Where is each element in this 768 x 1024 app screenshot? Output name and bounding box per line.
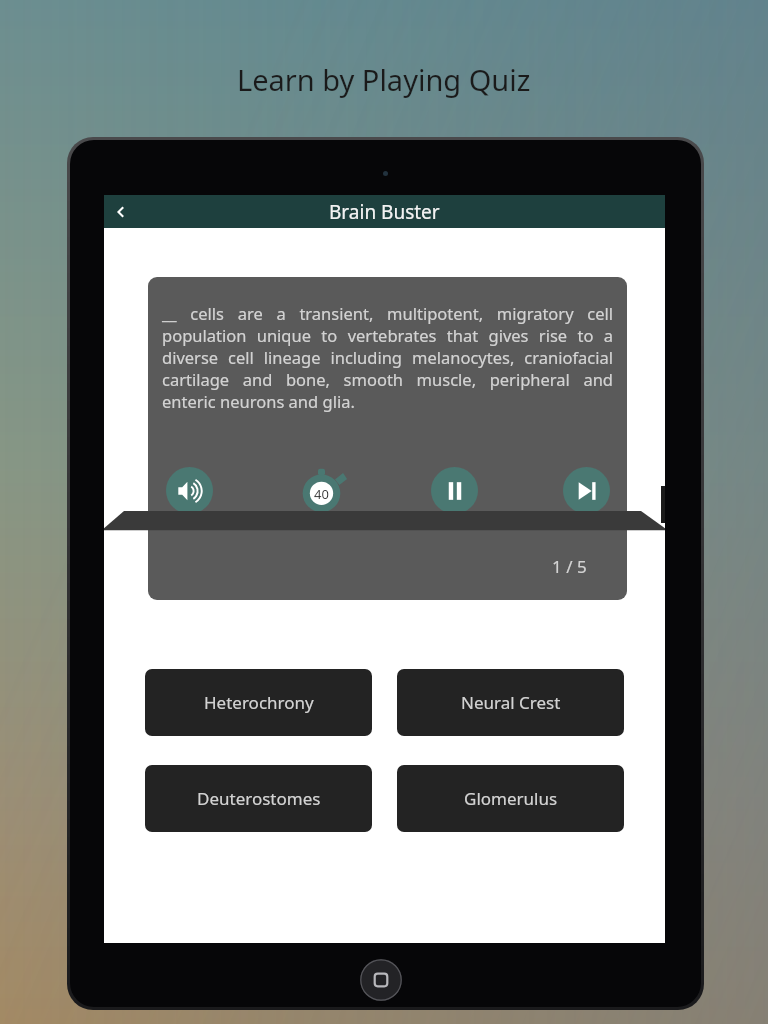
button[interactable]: Neural Crest bbox=[397, 669, 624, 736]
button[interactable]: Back bbox=[104, 195, 137, 228]
button[interactable]: Deuterostomes bbox=[145, 765, 372, 832]
staticText: __ cells are a transient, multipotent, m… bbox=[162, 303, 613, 413]
staticText: Glomerulus bbox=[464, 787, 558, 810]
staticText: 40 bbox=[314, 485, 329, 503]
staticText: 1 / 5 bbox=[552, 555, 587, 578]
button[interactable]: Pause bbox=[431, 467, 478, 514]
button[interactable]: Next question bbox=[563, 467, 610, 514]
button[interactable]: Timer 40 seconds bbox=[298, 467, 345, 514]
staticText: Neural Crest bbox=[461, 691, 561, 714]
button[interactable]: Volume bbox=[166, 467, 213, 514]
staticText: Learn by Playing Quiz bbox=[237, 60, 531, 99]
staticText: Brain Buster bbox=[329, 199, 440, 225]
staticText: Heterochrony bbox=[204, 691, 314, 714]
button[interactable]: Glomerulus bbox=[397, 765, 624, 832]
button[interactable]: Heterochrony bbox=[145, 669, 372, 736]
staticText: Deuterostomes bbox=[197, 787, 321, 810]
